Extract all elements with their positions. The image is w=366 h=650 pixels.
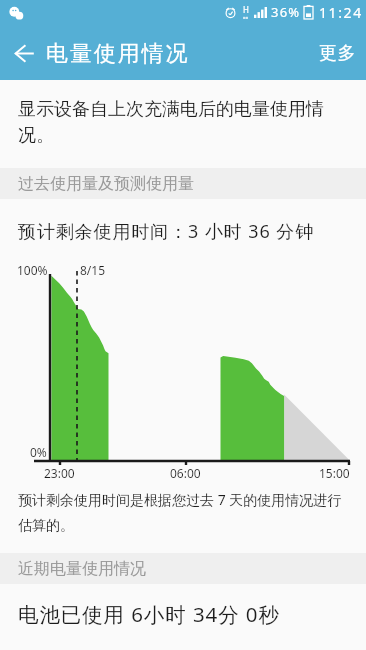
- staticText: 15:00: [319, 465, 350, 481]
- staticText: 预计剩余使用时间：3 小时 36 分钟: [18, 219, 315, 244]
- staticText: 23:00: [44, 465, 75, 481]
- staticText: H: [243, 4, 249, 15]
- staticText: 0%: [30, 444, 47, 460]
- staticText: 预计剩余使用时间是根据您过去 7 天的使用情况进行估算的。: [18, 490, 354, 534]
- staticText: 36%: [271, 3, 301, 21]
- staticText: 8/15: [80, 262, 106, 278]
- staticText: 电量使用情况: [46, 40, 190, 68]
- staticText: 近期电量使用情况: [18, 559, 146, 579]
- staticText: 100%: [17, 262, 48, 278]
- staticText: 电池已使用 6小时 34分 0秒: [18, 600, 280, 628]
- button[interactable]: Back: [8, 37, 40, 69]
- staticText: ▪▪: [243, 15, 249, 20]
- staticText: 06:00: [170, 465, 201, 481]
- staticText: 过去使用量及预测使用量: [18, 174, 194, 194]
- staticText: 11:24: [319, 3, 363, 22]
- staticText: 显示设备自上次充满电后的电量使用情况。: [18, 98, 336, 146]
- button[interactable]: 更多: [319, 42, 357, 65]
- staticText: 更多: [319, 42, 357, 65]
